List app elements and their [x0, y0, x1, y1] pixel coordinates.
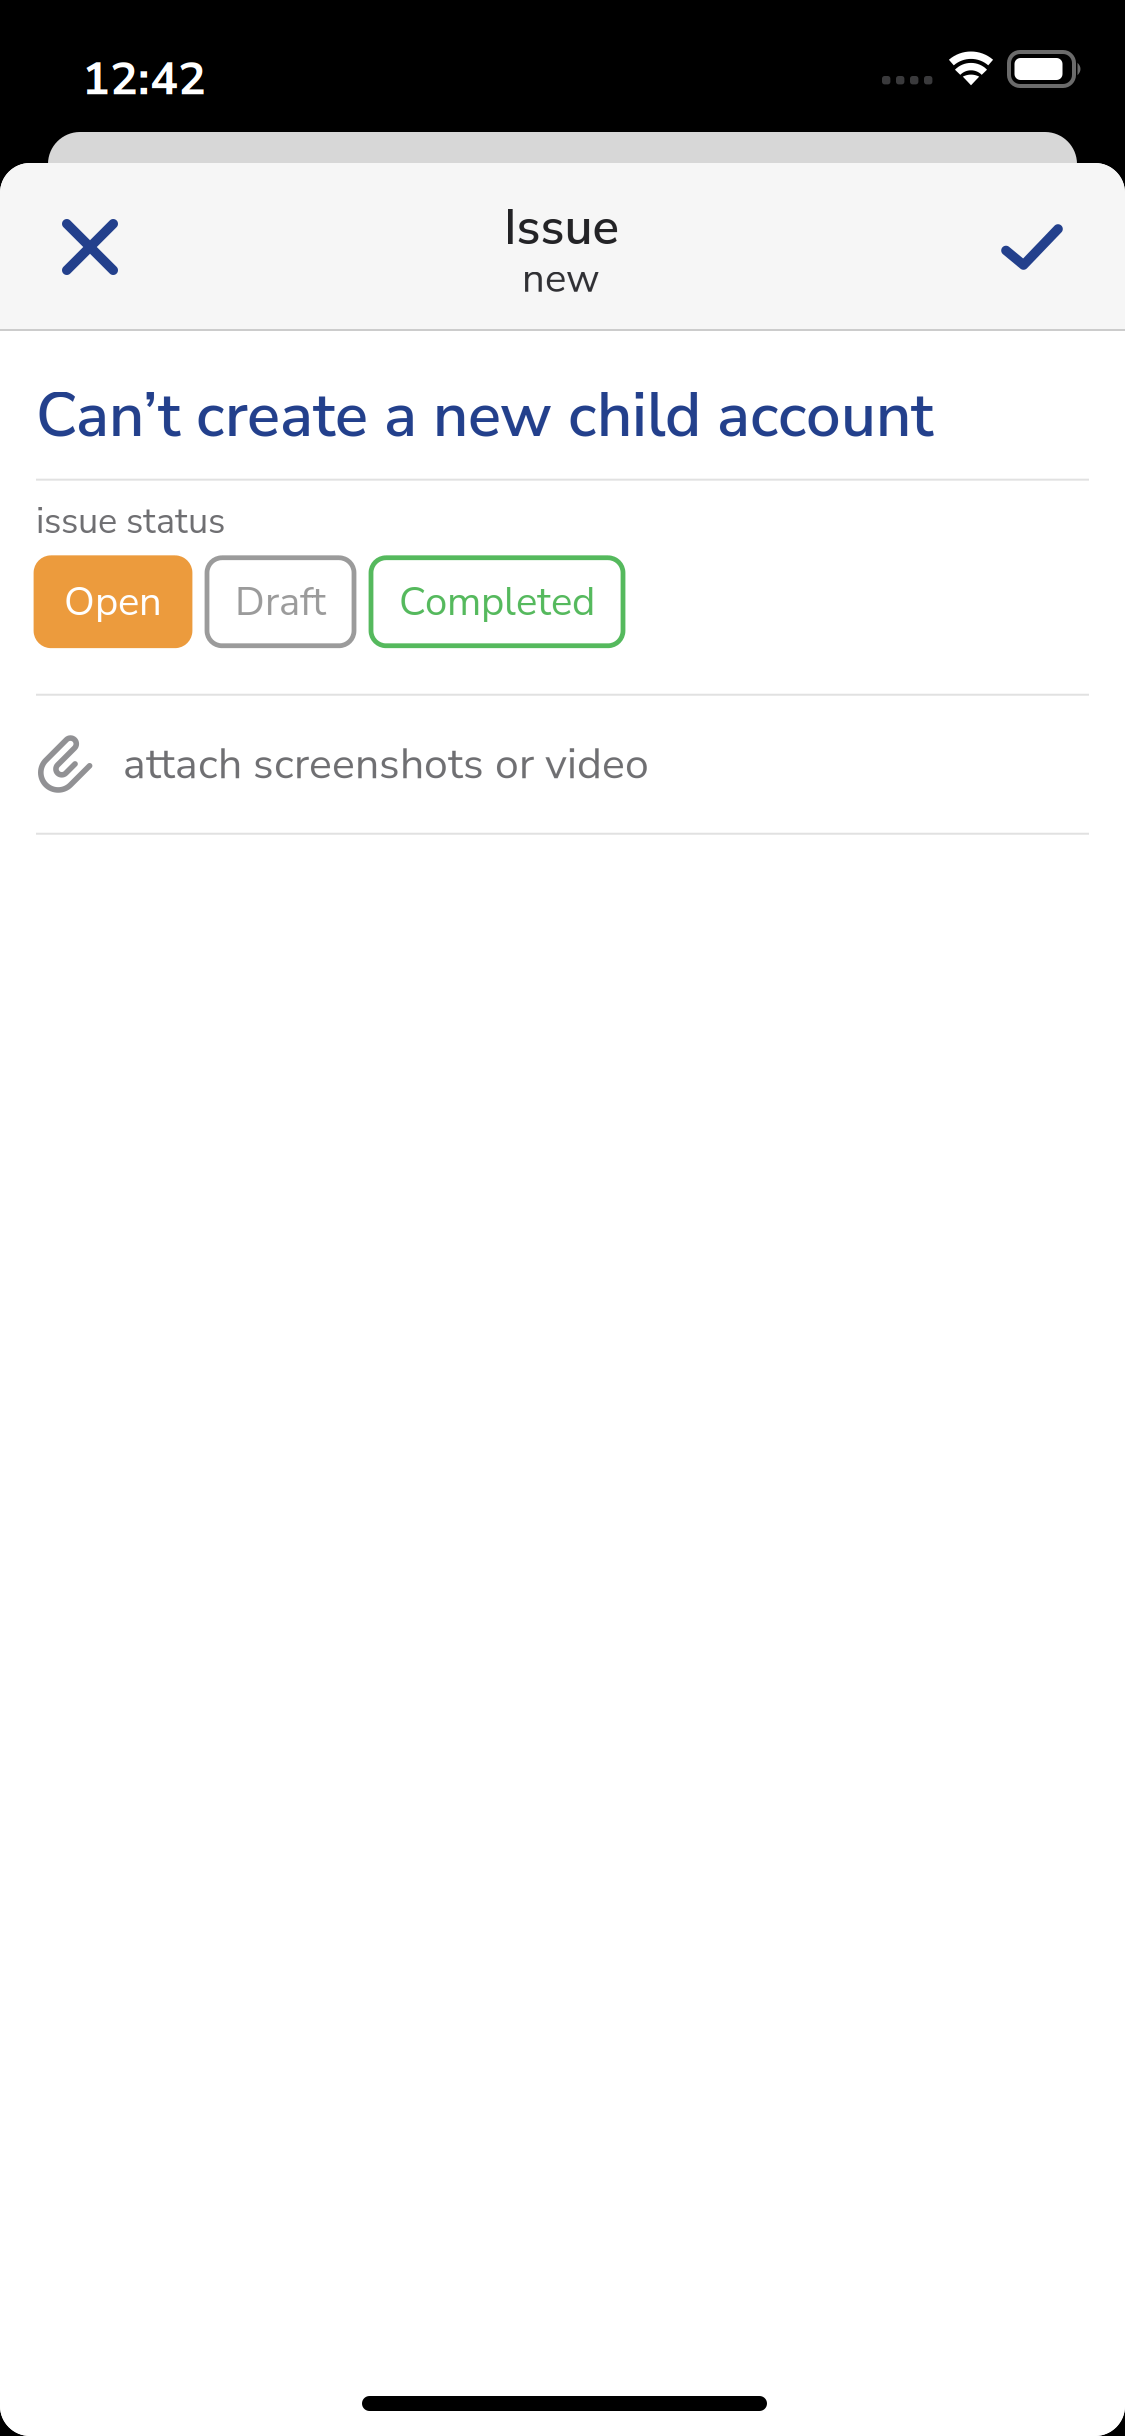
staticText: Open [64, 574, 162, 629]
staticText: issue status [36, 497, 225, 546]
button[interactable]: attach screenshots or video [36, 696, 1089, 833]
button[interactable]: Open [36, 558, 190, 646]
staticText: Draft [235, 574, 326, 629]
staticText: Issue [503, 194, 618, 261]
button[interactable]: Save [970, 165, 1094, 329]
staticText: Can’t create a new child account [36, 374, 933, 458]
staticText: 12:42 [82, 47, 206, 111]
staticText: Completed [399, 574, 595, 629]
button[interactable]: Draft [207, 558, 354, 646]
staticText: attach screenshots or video [123, 735, 649, 793]
button[interactable]: Close [28, 165, 152, 329]
staticText: new [522, 251, 600, 306]
button[interactable]: Completed [371, 558, 623, 646]
